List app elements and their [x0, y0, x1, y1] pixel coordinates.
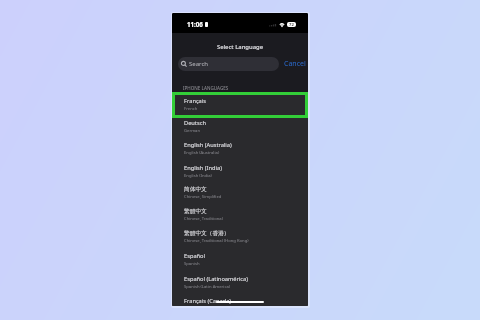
staticText: Français — [184, 97, 207, 105]
staticText: 繁體中文（香港） — [184, 230, 230, 237]
staticText: German — [184, 128, 200, 134]
staticText: Cancel — [284, 59, 306, 69]
button[interactable]: Français (Canada) — [172, 297, 308, 306]
staticText: Español — [184, 252, 205, 260]
staticText: English (India) — [184, 173, 212, 179]
button[interactable]: Deutsch — [172, 119, 308, 141]
button[interactable]: Français — [172, 92, 308, 118]
staticText: 72 — [289, 22, 294, 27]
staticText: 繁體中文 — [184, 208, 207, 215]
staticText: French — [184, 106, 198, 112]
staticText: Search — [189, 60, 208, 68]
button[interactable]: 简体中文 — [172, 186, 308, 208]
staticText: Français (Canada) — [184, 297, 232, 305]
button[interactable]: Cancel — [282, 57, 306, 71]
button[interactable]: Español — [172, 252, 308, 274]
button[interactable]: 繁體中文 — [172, 208, 308, 230]
button[interactable]: 繁體中文（香港） — [172, 230, 308, 252]
button[interactable]: English (Australia) — [172, 141, 308, 163]
staticText: Spanish (Latin America) — [184, 284, 231, 290]
staticText: English (Australia) — [184, 141, 232, 149]
staticText: Chinese, Traditional (Hong Kong) — [184, 238, 249, 244]
staticText: Deutsch — [184, 119, 206, 127]
staticText: 11:06 — [187, 20, 203, 28]
staticText: Chinese, Simplified — [184, 194, 222, 200]
staticText: Spanish — [184, 261, 200, 267]
staticText: English (India) — [184, 164, 222, 172]
staticText: Español (Latinoamérica) — [184, 275, 248, 283]
button[interactable]: Search — [178, 57, 279, 71]
staticText: Chinese, Traditional — [184, 216, 223, 222]
staticText: Select Language — [172, 43, 308, 51]
staticText: English (Australia) — [184, 150, 220, 156]
staticText: IPHONE LANGUAGES — [183, 85, 229, 91]
staticText: 简体中文 — [184, 186, 207, 193]
button[interactable]: Español (Latinoamérica) — [172, 275, 308, 297]
button[interactable]: English (India) — [172, 164, 308, 186]
